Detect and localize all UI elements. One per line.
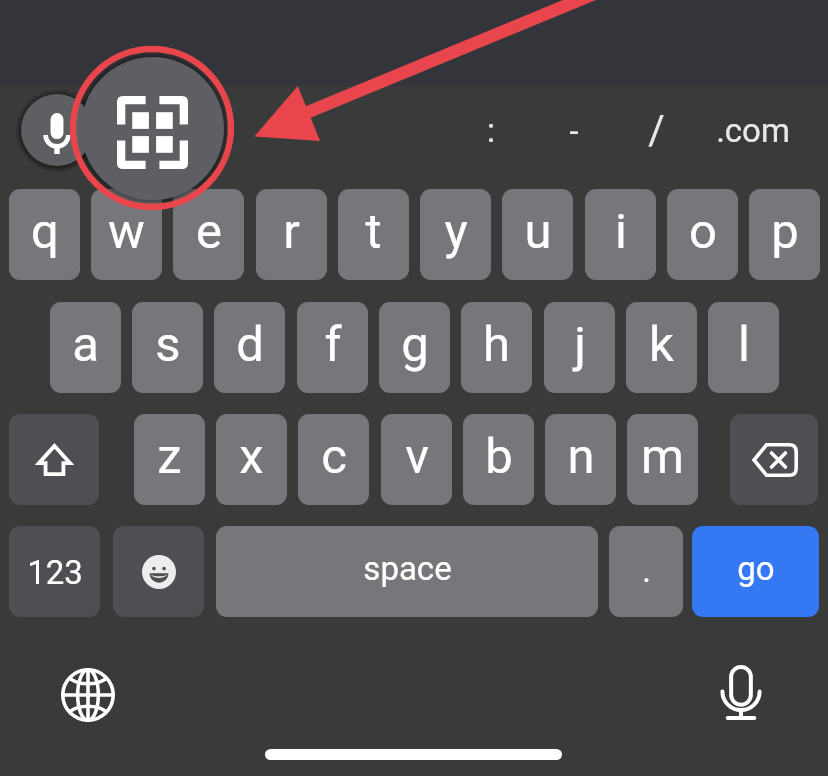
staticText: a [72, 316, 99, 373]
button[interactable]: t [338, 189, 409, 280]
button[interactable]: u [502, 189, 573, 280]
staticText: .com [716, 111, 790, 150]
button[interactable]: f [297, 302, 368, 393]
button[interactable]: x [216, 414, 287, 505]
button[interactable]: . [609, 526, 683, 617]
button[interactable]: m [627, 414, 698, 505]
button[interactable]: Emoji [113, 526, 204, 617]
staticText: - [569, 112, 579, 151]
button[interactable]: h [461, 302, 532, 393]
button[interactable]: j [544, 302, 615, 393]
staticText: e [196, 203, 222, 260]
staticText: s [155, 316, 181, 373]
button[interactable]: l [708, 302, 779, 393]
button[interactable]: Symbols [9, 526, 100, 617]
button[interactable]: r [256, 189, 327, 280]
staticText: go [737, 549, 775, 588]
button[interactable]: o [667, 189, 738, 280]
staticText: 123 [27, 553, 83, 592]
staticText: l [738, 316, 750, 373]
staticText: u [524, 203, 552, 260]
button[interactable]: k [626, 302, 697, 393]
staticText: y [444, 203, 468, 260]
staticText: : [487, 111, 495, 150]
button[interactable]: c [298, 414, 369, 505]
button[interactable]: .com [698, 87, 808, 175]
button[interactable]: w [91, 189, 162, 280]
staticText: t [365, 203, 382, 260]
staticText: o [689, 203, 717, 260]
staticText: n [567, 428, 595, 485]
staticText: p [771, 203, 799, 260]
button[interactable]: z [134, 414, 205, 505]
staticText: . [642, 551, 651, 590]
staticText: k [649, 316, 674, 373]
button[interactable]: Change keyboard language [56, 663, 120, 727]
button[interactable]: g [379, 302, 450, 393]
staticText: v [405, 428, 429, 485]
button[interactable]: i [585, 189, 656, 280]
button[interactable]: Shift [9, 414, 99, 505]
button[interactable]: d [214, 302, 285, 393]
staticText: j [574, 316, 586, 373]
staticText: i [615, 203, 627, 260]
button[interactable]: Scan QR code [81, 57, 224, 200]
staticText: d [236, 316, 264, 373]
staticText: h [483, 316, 510, 373]
staticText: x [239, 428, 264, 485]
button[interactable]: : [436, 87, 546, 175]
button[interactable]: v [381, 414, 452, 505]
button[interactable]: / [601, 87, 711, 175]
staticText: c [321, 428, 347, 485]
button[interactable]: - [519, 87, 629, 175]
button[interactable]: p [749, 189, 820, 280]
staticText: g [401, 316, 429, 373]
staticText: b [485, 428, 513, 485]
button[interactable]: b [463, 414, 534, 505]
staticText: w [108, 203, 145, 260]
button[interactable]: a [50, 302, 121, 393]
staticText: q [31, 203, 59, 260]
staticText: r [283, 203, 300, 260]
button[interactable]: e [173, 189, 244, 280]
button[interactable]: Voice input [708, 663, 773, 721]
staticText: f [324, 316, 342, 373]
staticText: / [648, 107, 665, 154]
button[interactable]: s [132, 302, 203, 393]
button[interactable]: y [420, 189, 491, 280]
button[interactable]: go [692, 526, 819, 617]
button[interactable]: Voice search [21, 94, 93, 166]
button[interactable]: Backspace [730, 414, 818, 505]
button[interactable]: q [9, 189, 80, 280]
staticText: space [363, 549, 452, 588]
button[interactable]: space [216, 526, 598, 617]
staticText: m [641, 428, 684, 485]
button[interactable]: n [545, 414, 616, 505]
staticText: z [157, 428, 182, 485]
